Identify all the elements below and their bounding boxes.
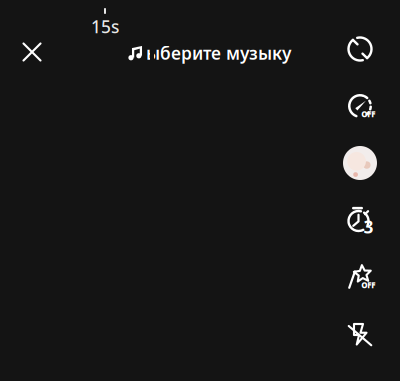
button[interactable]: Filters bbox=[337, 140, 383, 186]
button[interactable]: Enhance bbox=[337, 254, 383, 300]
staticText: ыберите музыку bbox=[146, 41, 291, 64]
staticText: OFF bbox=[361, 280, 375, 290]
staticText: 15s bbox=[91, 15, 119, 38]
staticText: OFF bbox=[361, 109, 375, 119]
staticText: 3 bbox=[363, 215, 373, 238]
button[interactable]: Flash bbox=[337, 311, 383, 357]
button[interactable]: Speed bbox=[337, 83, 383, 129]
button[interactable]: Flip camera bbox=[337, 26, 383, 72]
button[interactable]: Timer bbox=[337, 197, 383, 243]
button[interactable]: Close bbox=[10, 30, 54, 74]
button[interactable]: ыберите музыку bbox=[118, 38, 305, 68]
